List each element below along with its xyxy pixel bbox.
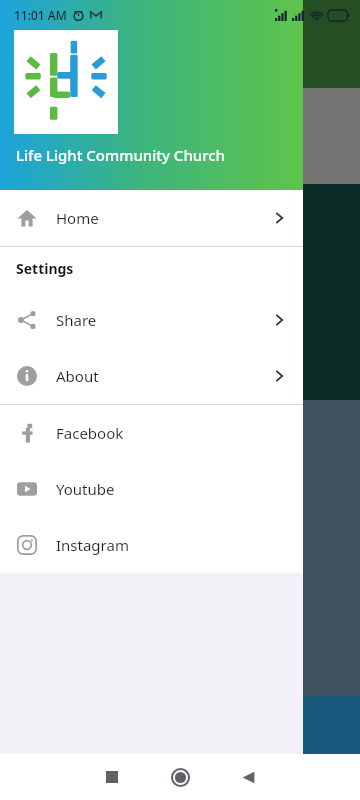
- staticText: Life Light Community Church: [16, 145, 226, 165]
- button[interactable]: Share: [0, 292, 303, 348]
- staticText: 11:01 AM: [14, 7, 67, 23]
- staticText: Home: [56, 208, 99, 228]
- button[interactable]: Facebook: [0, 405, 303, 461]
- button[interactable]: Instagram: [0, 517, 303, 573]
- staticText: Settings: [16, 259, 74, 278]
- staticText: Instagram: [56, 535, 129, 555]
- button[interactable]: Recent apps: [92, 757, 132, 797]
- button[interactable]: Home: [160, 757, 200, 797]
- staticText: Youtube: [56, 479, 115, 499]
- button[interactable]: Home: [0, 190, 303, 246]
- staticText: e to: [2, 553, 29, 573]
- button[interactable]: Back: [228, 757, 268, 797]
- button[interactable]: Youtube: [0, 461, 303, 517]
- staticText: Share: [56, 310, 97, 330]
- staticText: About: [56, 366, 99, 386]
- staticText: Facebook: [56, 423, 124, 443]
- button[interactable]: About: [0, 348, 303, 404]
